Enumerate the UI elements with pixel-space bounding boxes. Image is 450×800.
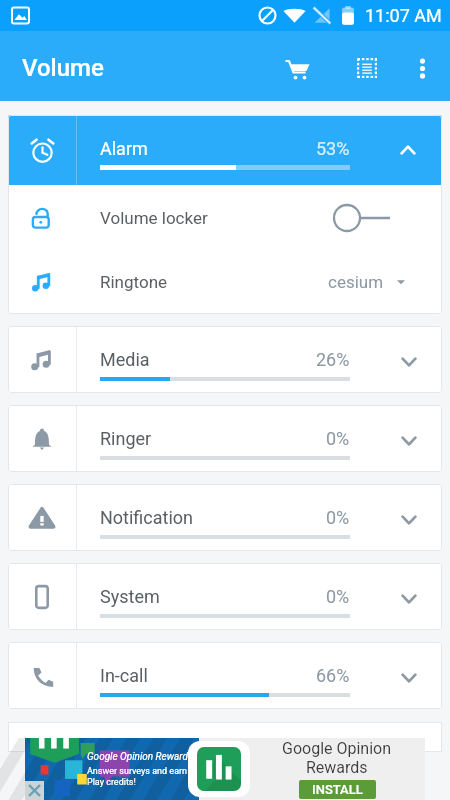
- staticText: In-call: [100, 665, 148, 686]
- button[interactable]: Ringtone: [8, 250, 442, 314]
- staticText: cesium: [328, 272, 384, 292]
- staticText: 26%: [316, 349, 350, 370]
- staticText: 11:07 AM: [365, 5, 442, 26]
- button[interactable]: Expand Notification: [380, 484, 442, 551]
- button[interactable]: Expand System: [380, 563, 442, 630]
- staticText: 66%: [316, 665, 350, 686]
- button[interactable]: Alarm: [8, 115, 442, 185]
- button[interactable]: Ringer: [8, 405, 442, 472]
- button[interactable]: System: [8, 563, 442, 630]
- button[interactable]: Expand Media: [380, 326, 442, 393]
- button[interactable]: Shop: [260, 40, 334, 96]
- button[interactable]: Volume locker: [8, 185, 442, 250]
- button[interactable]: Notification: [8, 484, 442, 551]
- button[interactable]: Collapse: [380, 115, 442, 185]
- button[interactable]: Expand In-call: [380, 642, 442, 709]
- staticText: Rewards: [306, 758, 368, 777]
- staticText: Alarm: [100, 138, 148, 159]
- staticText: 0%: [326, 428, 350, 449]
- staticText: Volume locker: [100, 208, 208, 228]
- button[interactable]: Media: [8, 326, 442, 393]
- button[interactable]: In-call: [8, 642, 442, 709]
- button[interactable]: Close ad: [25, 781, 44, 800]
- staticText: Google Opinion Rewards: [87, 751, 193, 763]
- staticText: Ringtone: [100, 272, 168, 292]
- staticText: Media: [100, 349, 150, 370]
- staticText: Volume: [22, 54, 104, 82]
- staticText: 53%: [316, 138, 350, 159]
- staticText: INSTALL: [312, 782, 363, 797]
- staticText: Google Opinion: [282, 739, 392, 758]
- staticText: Play credits!: [87, 777, 136, 788]
- staticText: 0%: [326, 507, 350, 528]
- staticText: System: [100, 586, 160, 607]
- button[interactable]: Expand Ringer: [380, 405, 442, 472]
- button[interactable]: Google Opinion Rewards: [25, 738, 425, 800]
- staticText: 0%: [326, 586, 350, 607]
- staticText: Ringer: [100, 428, 152, 449]
- button[interactable]: More options: [400, 40, 444, 96]
- button[interactable]: Presets: [334, 40, 400, 96]
- button[interactable]: INSTALL: [312, 782, 363, 797]
- staticText: Answer surveys and earn: [87, 766, 188, 777]
- staticText: Notification: [100, 507, 194, 528]
